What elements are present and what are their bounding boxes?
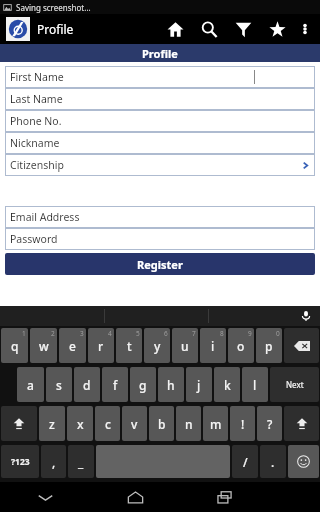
staticText: _ — [78, 454, 84, 470]
button[interactable]: b — [149, 406, 174, 441]
button[interactable]: _ — [68, 445, 94, 478]
staticText: Nickname — [10, 136, 60, 150]
button[interactable]: z — [39, 406, 65, 441]
button[interactable]: Filter — [226, 14, 260, 44]
staticText: v — [131, 416, 138, 432]
button[interactable]: r — [88, 328, 114, 363]
button[interactable]: Citizenship — [5, 154, 315, 176]
button[interactable]: / — [232, 445, 258, 478]
button[interactable]: h — [158, 367, 184, 402]
button[interactable]: ! — [230, 406, 255, 441]
button[interactable]: u — [172, 328, 198, 363]
button[interactable]: Home — [158, 14, 192, 44]
staticText: g — [139, 377, 147, 393]
button[interactable]: Home — [90, 482, 180, 512]
staticText: Saving screenshot... — [16, 2, 91, 13]
button[interactable]: x — [67, 406, 93, 441]
button[interactable]: p — [256, 328, 282, 363]
staticText: p — [265, 338, 273, 354]
button[interactable]: First Name — [5, 66, 315, 88]
button[interactable]: v — [122, 406, 147, 441]
staticText: f — [113, 377, 118, 393]
staticText: First Name — [10, 70, 64, 84]
staticText: t — [127, 338, 132, 354]
button[interactable]: Last Name — [5, 88, 315, 110]
button[interactable]: Phone No. — [5, 110, 315, 132]
staticText: i — [211, 338, 215, 354]
button[interactable]: i — [200, 328, 226, 363]
button[interactable]: Password — [5, 228, 315, 250]
staticText: a — [27, 377, 34, 393]
button[interactable]: q — [1, 328, 28, 363]
button[interactable]: Next — [270, 367, 319, 402]
staticText: Profile — [37, 21, 74, 37]
button[interactable]: Shift — [1, 406, 37, 441]
button[interactable]: d — [74, 367, 100, 402]
button[interactable]: o — [228, 328, 254, 363]
button[interactable] — [6, 17, 30, 41]
staticText: w — [39, 338, 49, 354]
staticText: Profile — [142, 46, 178, 61]
button[interactable]: f — [102, 367, 128, 402]
button[interactable]: , — [41, 445, 66, 478]
button[interactable]: k — [214, 367, 240, 402]
button[interactable]: More options — [294, 14, 316, 44]
staticText: s — [56, 377, 62, 393]
staticText: 8 — [220, 329, 224, 338]
staticText: Last Name — [10, 92, 63, 106]
button[interactable]: Backspace — [284, 328, 319, 363]
button[interactable]: s — [46, 367, 72, 402]
button[interactable]: Shift — [284, 406, 319, 441]
button[interactable]: Email Address — [5, 206, 315, 228]
button[interactable]: m — [203, 406, 228, 441]
button[interactable]: Search — [192, 14, 226, 44]
staticText: l — [253, 377, 257, 393]
button[interactable]: Favorites — [260, 14, 294, 44]
staticText: m — [210, 416, 222, 432]
button[interactable]: n — [176, 406, 201, 441]
button[interactable]: . — [260, 445, 286, 478]
staticText: n — [185, 416, 193, 432]
button[interactable]: g — [130, 367, 156, 402]
button[interactable]: l — [242, 367, 268, 402]
button[interactable]: Emoji — [288, 445, 319, 478]
staticText: 2 — [51, 329, 55, 338]
button[interactable]: ?123 — [1, 445, 39, 478]
button[interactable]: y — [144, 328, 170, 363]
staticText: ?123 — [11, 456, 30, 468]
button[interactable]: t — [116, 328, 142, 363]
staticText: 7 — [192, 329, 196, 338]
staticText: ! — [241, 416, 245, 432]
staticText: j — [197, 377, 201, 393]
staticText: k — [224, 377, 231, 393]
button[interactable]: Hide keyboard — [0, 482, 90, 512]
button[interactable]: Voice input — [209, 306, 312, 326]
staticText: Password — [10, 232, 58, 246]
button[interactable]: Recent apps — [180, 482, 270, 512]
button[interactable]: ? — [257, 406, 282, 441]
staticText: Next — [286, 379, 304, 390]
button[interactable]: e — [59, 328, 86, 363]
staticText: ? — [267, 416, 273, 432]
staticText: / — [243, 454, 248, 470]
staticText: h — [167, 377, 175, 393]
staticText: 5 — [136, 329, 140, 338]
button[interactable]: Register — [5, 253, 315, 275]
button[interactable]: w — [30, 328, 57, 363]
staticText: c — [105, 416, 111, 432]
button[interactable]: c — [95, 406, 120, 441]
staticText: d — [83, 377, 91, 393]
staticText: 6 — [164, 329, 168, 338]
staticText: u — [181, 338, 189, 354]
button[interactable]: Nickname — [5, 132, 315, 154]
staticText: 4 — [108, 329, 112, 338]
staticText: 0 — [276, 329, 280, 338]
staticText: e — [69, 338, 76, 354]
button[interactable]: a — [17, 367, 44, 402]
button[interactable]: j — [186, 367, 212, 402]
staticText: r — [98, 338, 104, 354]
staticText: q — [11, 338, 19, 354]
